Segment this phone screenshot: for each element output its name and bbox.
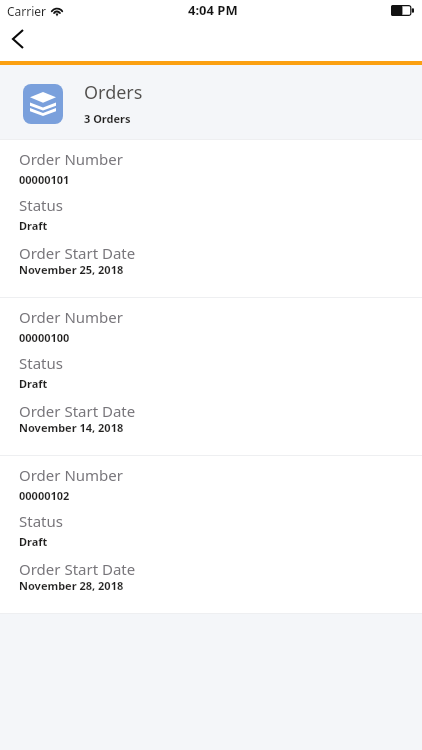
staticText: 3 Orders <box>84 111 131 126</box>
button[interactable]: Back <box>4 25 32 53</box>
staticText: Order Start Date <box>19 559 136 579</box>
staticText: Status <box>19 511 63 531</box>
staticText: Order Number <box>19 149 123 169</box>
button[interactable]: Order Number <box>0 298 422 455</box>
staticText: 00000100 <box>19 330 70 345</box>
staticText: 00000101 <box>19 172 70 187</box>
staticText: Carrier <box>7 3 47 19</box>
staticText: Order Start Date <box>19 401 136 421</box>
staticText: Order Number <box>19 307 123 327</box>
staticText: Draft <box>19 218 48 233</box>
staticText: Draft <box>19 534 48 549</box>
staticText: 4:04 PM <box>188 1 238 19</box>
button[interactable]: Order Number <box>0 140 422 297</box>
staticText: Draft <box>19 376 48 391</box>
staticText: Order Number <box>19 465 123 485</box>
button[interactable]: Order Number <box>0 456 422 613</box>
staticText: Status <box>19 353 63 373</box>
staticText: November 14, 2018 <box>19 420 124 435</box>
staticText: November 25, 2018 <box>19 262 124 277</box>
staticText: Order Start Date <box>19 243 136 263</box>
staticText: November 28, 2018 <box>19 578 124 593</box>
staticText: 00000102 <box>19 488 70 503</box>
staticText: Orders <box>84 80 143 105</box>
staticText: Status <box>19 195 63 215</box>
